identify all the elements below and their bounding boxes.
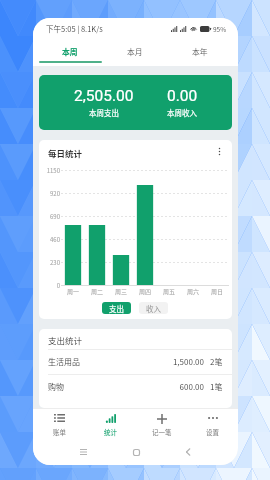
- button[interactable]: 本年: [169, 39, 231, 66]
- button[interactable]: 收入: [139, 302, 168, 314]
- staticText: 支出: [109, 303, 124, 314]
- staticText: 2笔: [210, 356, 223, 368]
- button[interactable]: 购物: [39, 374, 232, 399]
- staticText: 95%: [213, 24, 227, 33]
- staticText: 本年: [192, 46, 208, 57]
- staticText: 周四: [133, 287, 157, 296]
- staticText: 支出统计: [48, 334, 83, 346]
- staticText: 每日统计: [48, 147, 83, 159]
- button[interactable]: 本月: [104, 39, 166, 66]
- staticText: 0.00: [167, 87, 198, 105]
- staticText: 920: [39, 189, 60, 198]
- staticText: 购物: [48, 381, 64, 393]
- button[interactable]: 记一笔: [136, 408, 187, 438]
- staticText: 本周支出: [89, 107, 119, 118]
- button[interactable]: More: [212, 144, 226, 158]
- staticText: 本周: [62, 46, 78, 57]
- staticText: 周一: [61, 287, 85, 296]
- staticText: 周日: [205, 287, 229, 296]
- staticText: 本月: [127, 46, 143, 57]
- staticText: 生活用品: [48, 356, 80, 368]
- button[interactable]: 设置: [187, 408, 238, 438]
- staticText: 周三: [109, 287, 133, 296]
- staticText: 460: [39, 235, 60, 244]
- staticText: 2,505.00: [74, 87, 134, 105]
- staticText: 1150: [39, 166, 60, 175]
- staticText: 690: [39, 212, 60, 221]
- staticText: 本周收入: [167, 107, 197, 118]
- button[interactable]: 账单: [33, 408, 85, 438]
- staticText: 600.00: [144, 381, 204, 393]
- button[interactable]: 本周: [39, 39, 101, 66]
- staticText: 1,500.00: [144, 356, 204, 368]
- button[interactable]: 生活用品: [39, 349, 232, 374]
- staticText: 1笔: [210, 381, 223, 393]
- staticText: 统计: [104, 427, 117, 436]
- staticText: 0: [39, 281, 60, 290]
- staticText: 周五: [157, 287, 181, 296]
- staticText: 230: [39, 258, 60, 267]
- button[interactable]: Home: [127, 443, 145, 461]
- staticText: 下午5:05 | 8.1K/s: [46, 23, 103, 34]
- staticText: 周二: [85, 287, 109, 296]
- staticText: 周六: [181, 287, 205, 296]
- button[interactable]: Back: [179, 443, 197, 461]
- staticText: 设置: [206, 427, 219, 436]
- button[interactable]: 统计: [85, 408, 136, 438]
- staticText: 记一笔: [152, 427, 172, 436]
- staticText: 收入: [146, 303, 161, 314]
- button[interactable]: 2,505.00: [39, 75, 232, 130]
- button[interactable]: 支出: [102, 302, 131, 314]
- staticText: 账单: [53, 427, 66, 436]
- button[interactable]: Recents: [74, 443, 92, 461]
